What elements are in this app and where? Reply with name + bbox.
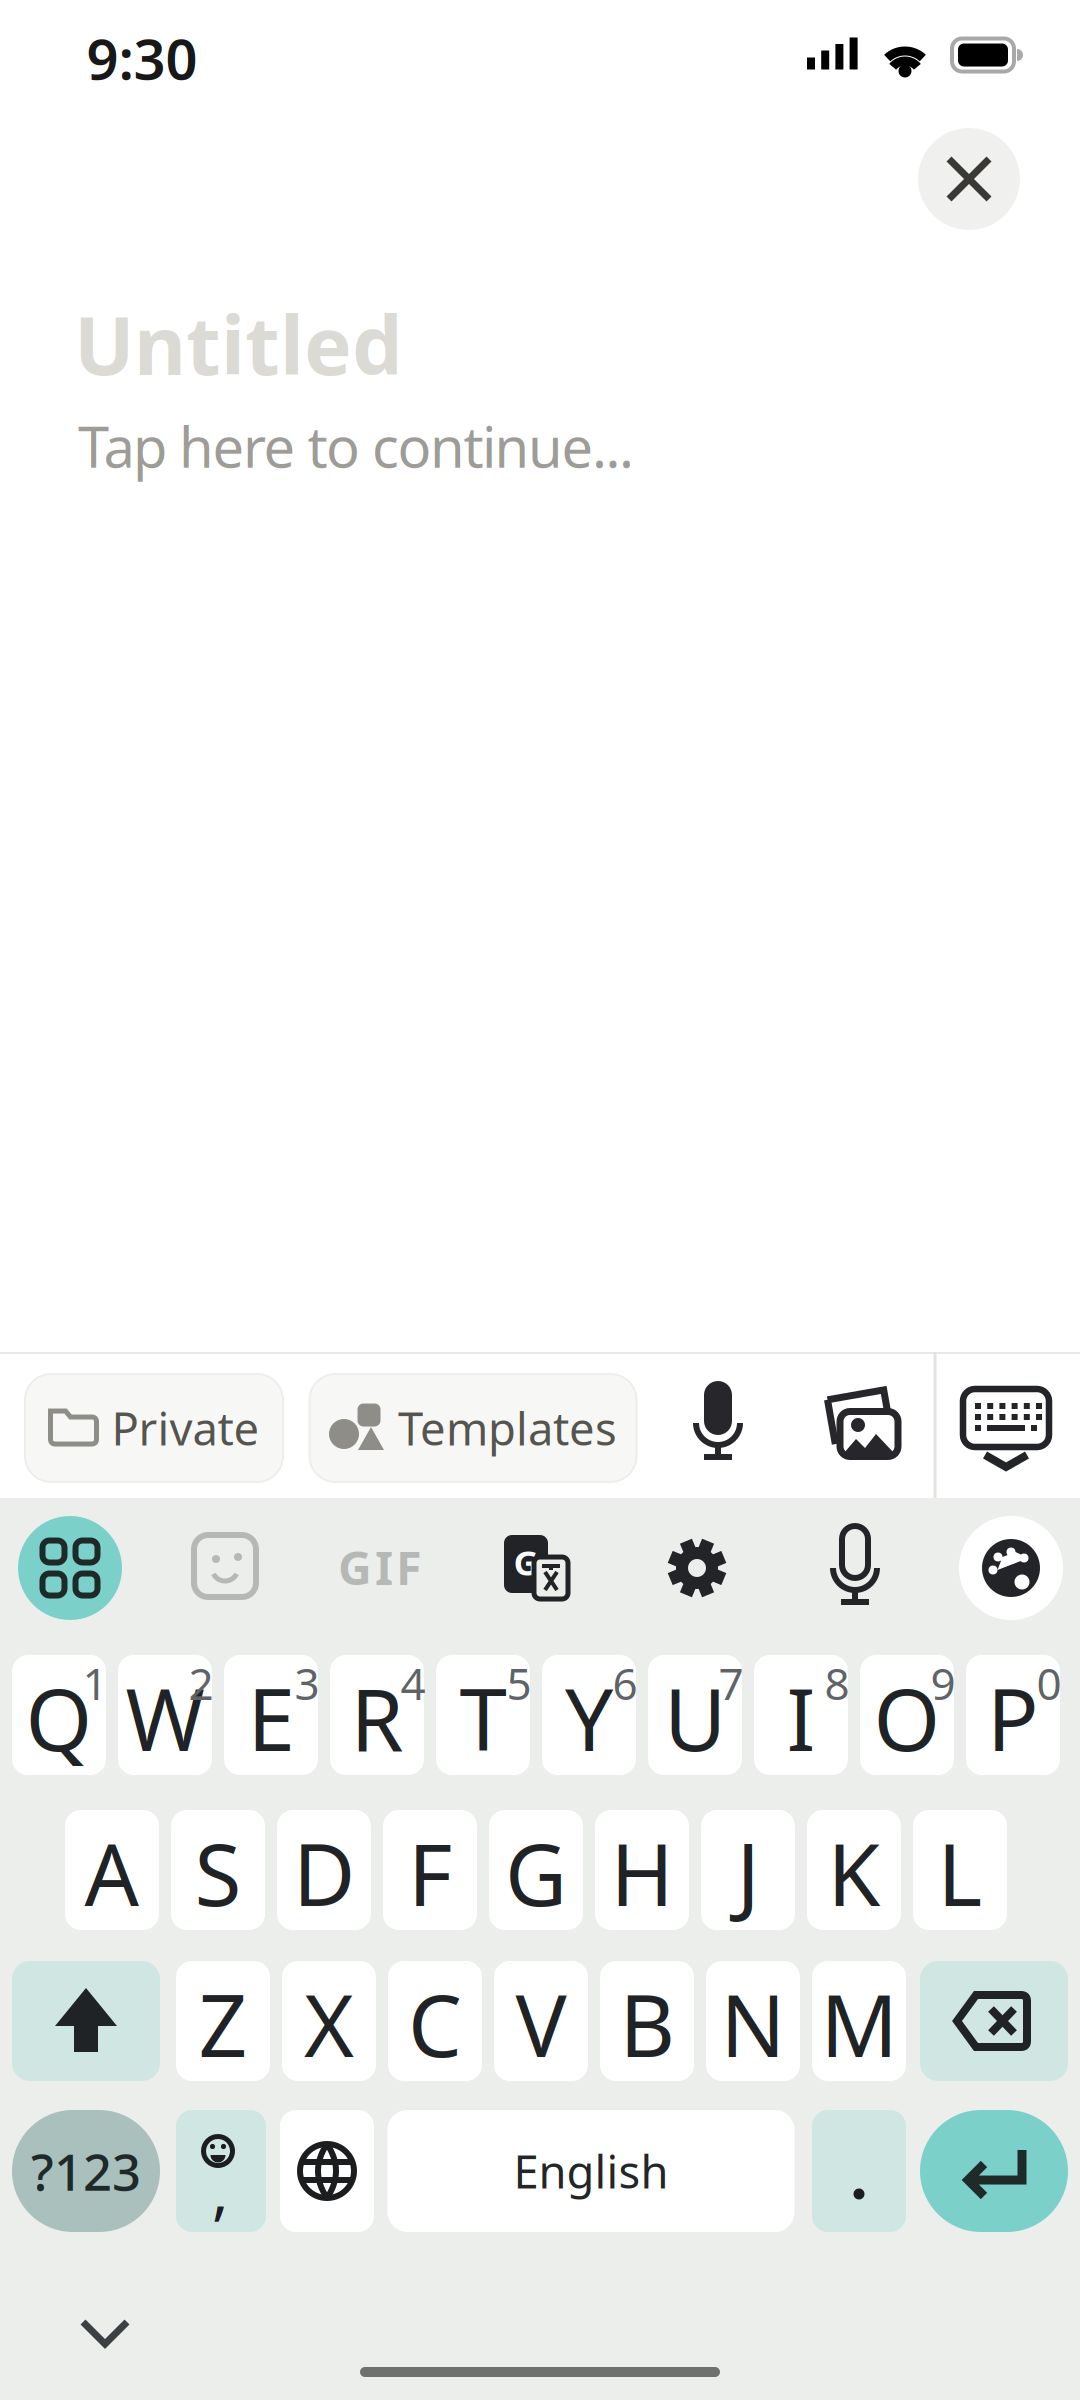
button[interactable]: G [489, 1810, 583, 1930]
staticText: 3 [294, 1654, 319, 1712]
button[interactable]: W [118, 1655, 212, 1775]
staticText: I [786, 1661, 815, 1775]
staticText: 0 [1036, 1654, 1061, 1712]
staticText: 1 [82, 1654, 107, 1712]
staticText: GIF [338, 1536, 422, 1598]
staticText: C [408, 1967, 462, 2081]
button[interactable]: L [913, 1810, 1007, 1930]
staticText: T [459, 1661, 506, 1775]
staticText: 8 [824, 1654, 849, 1712]
button[interactable]: Q [12, 1655, 106, 1775]
staticText: J [736, 1816, 759, 1930]
button[interactable]: P [966, 1655, 1060, 1775]
button[interactable]: Stickers [190, 1531, 260, 1601]
button[interactable]: Shift [12, 1961, 160, 2081]
staticText: H [610, 1816, 673, 1930]
staticText: K [827, 1816, 880, 1930]
button[interactable]: J [701, 1810, 795, 1930]
button[interactable]: Dictation [668, 1369, 768, 1479]
button[interactable]: Voice typing [815, 1521, 895, 1611]
button[interactable]: V [494, 1961, 588, 2081]
button[interactable]: Templates [309, 1374, 636, 1482]
staticText: English [513, 2141, 668, 2201]
staticText: 6 [612, 1654, 637, 1712]
button[interactable]: N [706, 1961, 800, 2081]
staticText: B [619, 1967, 674, 2081]
staticText: V [515, 1967, 566, 2081]
staticText: A [84, 1816, 139, 1930]
button[interactable]: Space [387, 2110, 794, 2232]
staticText: U [664, 1661, 726, 1775]
staticText: G [505, 1816, 567, 1930]
staticText: P [987, 1661, 1039, 1775]
button[interactable]: B [600, 1961, 694, 2081]
button[interactable]: Y [542, 1655, 636, 1775]
button[interactable]: Themes [959, 1516, 1063, 1620]
staticText: W [125, 1661, 204, 1775]
staticText: O [873, 1661, 940, 1775]
button[interactable]: Symbols [12, 2110, 160, 2232]
staticText: Y [565, 1661, 613, 1775]
staticText: D [293, 1816, 355, 1930]
button[interactable]: Return [920, 2110, 1068, 2232]
button[interactable]: Collapse [65, 2303, 145, 2363]
button[interactable]: Settings [657, 1528, 737, 1608]
staticText: G [513, 1539, 538, 1585]
button[interactable]: Private [25, 1374, 283, 1482]
staticText: L [937, 1816, 982, 1930]
button[interactable]: T [436, 1655, 530, 1775]
staticText: Tap here to continue... [78, 409, 634, 483]
staticText: 2 [188, 1654, 213, 1712]
button[interactable]: Photos [806, 1367, 916, 1477]
staticText: N [720, 1967, 785, 2081]
button[interactable]: C [388, 1961, 482, 2081]
button[interactable]: S [171, 1810, 265, 1930]
button[interactable]: R [330, 1655, 424, 1775]
button[interactable]: GIF [320, 1527, 440, 1607]
button[interactable]: Close [918, 128, 1020, 230]
button[interactable]: E [224, 1655, 318, 1775]
staticText: Templates [398, 1398, 617, 1458]
button[interactable]: Features [18, 1516, 122, 1620]
staticText: 9:30 [86, 21, 197, 95]
staticText: E [247, 1661, 294, 1775]
staticText: 7 [718, 1654, 743, 1712]
button[interactable]: Switch language [280, 2110, 374, 2232]
button[interactable]: Z [176, 1961, 270, 2081]
button[interactable]: O [860, 1655, 954, 1775]
staticText: ?123 [31, 2137, 141, 2205]
button[interactable]: Period [812, 2110, 906, 2232]
staticText: 4 [400, 1654, 425, 1712]
staticText: 9 [930, 1654, 955, 1712]
button[interactable]: F [383, 1810, 477, 1930]
staticText: 5 [506, 1654, 531, 1712]
staticText: Z [198, 1967, 247, 2081]
button[interactable]: Emoji [176, 2110, 266, 2232]
staticText: M [820, 1967, 897, 2081]
staticText: Private [111, 1398, 259, 1458]
button[interactable]: Hide keyboard [951, 1373, 1061, 1483]
staticText: R [350, 1661, 403, 1775]
staticText: Untitled [74, 291, 403, 397]
staticText: S [194, 1816, 241, 1930]
staticText: X [304, 1967, 354, 2081]
button[interactable]: D [277, 1810, 371, 1930]
button[interactable]: I [754, 1655, 848, 1775]
button[interactable]: M [812, 1961, 906, 2081]
button[interactable]: X [282, 1961, 376, 2081]
button[interactable]: A [65, 1810, 159, 1930]
button[interactable]: U [648, 1655, 742, 1775]
button[interactable]: H [595, 1810, 689, 1930]
button[interactable]: Delete [920, 1961, 1068, 2081]
button[interactable]: K [807, 1810, 901, 1930]
staticText: Q [25, 1661, 92, 1775]
button[interactable]: Translate [496, 1528, 576, 1608]
staticText: , [212, 2149, 228, 2231]
staticText: F [408, 1816, 452, 1930]
